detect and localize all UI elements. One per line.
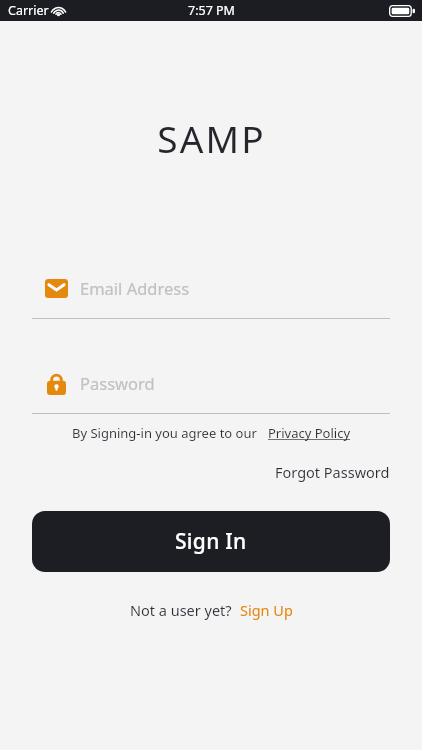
staticText: SAMP	[157, 113, 266, 163]
button[interactable]: Password	[32, 363, 390, 403]
button[interactable]: Sign In	[32, 511, 390, 572]
staticText: Password	[80, 372, 155, 394]
button[interactable]: Privacy Policy	[268, 424, 351, 442]
staticText: Not a user yet?	[130, 600, 232, 620]
staticText: Carrier	[8, 2, 49, 19]
staticText: Email Address	[80, 277, 190, 299]
staticText: Privacy Policy	[268, 424, 351, 442]
button[interactable]: Sign Up	[240, 600, 293, 620]
button[interactable]: Email Address	[32, 268, 390, 308]
button[interactable]: Forgot Password	[275, 462, 390, 482]
staticText: Forgot Password	[275, 462, 390, 482]
staticText: Sign In	[175, 527, 247, 556]
staticText: Sign Up	[240, 600, 293, 620]
staticText: 7:57 PM	[188, 2, 235, 19]
staticText: By Signing-in you agree to our	[72, 424, 257, 442]
